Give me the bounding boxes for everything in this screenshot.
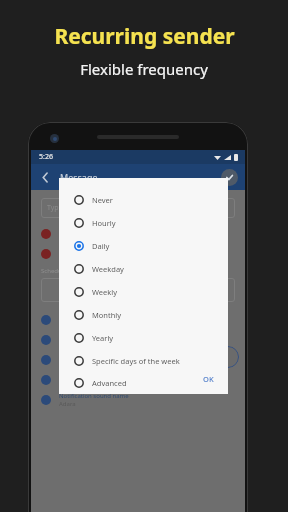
staticText: Repeat (59, 316, 79, 324)
staticText: Yearly (92, 333, 114, 343)
staticText: Weekday (92, 264, 124, 274)
staticText: Delivery report (59, 336, 102, 344)
staticText: Specific days of the week (92, 356, 180, 366)
staticText: 5:26 (39, 152, 53, 162)
button[interactable]: OK (199, 372, 218, 386)
button[interactable]: Daily (59, 234, 228, 257)
button[interactable]: Weekday (59, 257, 228, 280)
staticText: Recurring sender (54, 22, 235, 51)
staticText: Flexible frequency (80, 59, 208, 79)
button[interactable]: Type a name (41, 198, 235, 218)
button[interactable]: Weekly (59, 280, 228, 303)
staticText: Hourly (92, 218, 116, 228)
staticText: OK (203, 374, 214, 384)
button[interactable]: Never (59, 188, 228, 211)
button[interactable]: Info (31, 370, 245, 390)
staticText: Notification sound name (59, 392, 129, 400)
button[interactable]: Specific days of the week (59, 349, 228, 372)
button[interactable]: Advanced (59, 372, 228, 394)
staticText: Never (92, 195, 113, 205)
button[interactable]: Hourly (59, 211, 228, 234)
button[interactable]: Add (217, 346, 239, 368)
staticText: Schedule (41, 267, 67, 275)
button[interactable]: Recipients (31, 224, 245, 244)
button[interactable]: Monthly (59, 303, 228, 326)
button[interactable]: Delivery report (31, 330, 245, 350)
staticText: Message (60, 171, 98, 183)
staticText: Type a name (47, 203, 89, 213)
button[interactable]: Repeat (31, 310, 245, 330)
staticText: Weekly (92, 287, 118, 297)
button[interactable]: Notification (31, 350, 245, 370)
button[interactable]: Back (35, 167, 55, 187)
button[interactable]: Yearly (59, 326, 228, 349)
button[interactable]: Save (221, 169, 238, 186)
staticText: Notification (59, 356, 92, 364)
staticText: Message (59, 250, 85, 258)
staticText: Advanced (92, 378, 127, 388)
button[interactable]: Message (31, 244, 245, 264)
staticText: Monthly (92, 310, 122, 320)
staticText: Daily (92, 241, 110, 251)
button[interactable]: Notification sound name (31, 390, 245, 410)
staticText: Adara (59, 400, 76, 408)
